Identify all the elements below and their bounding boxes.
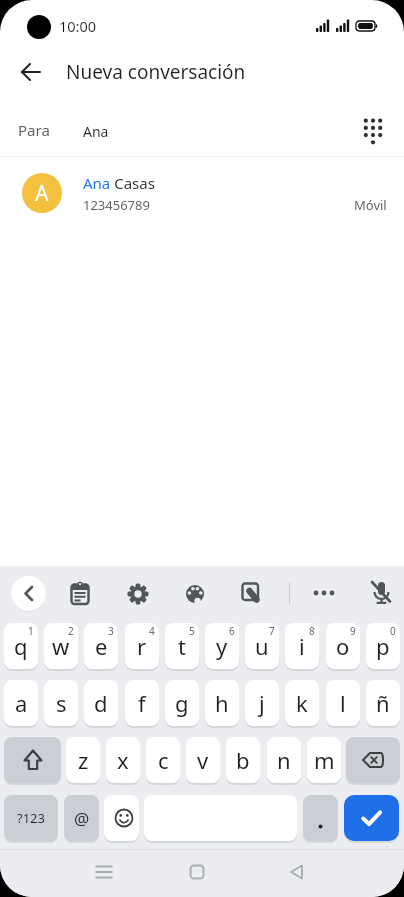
- button[interactable]: x: [106, 737, 140, 783]
- button[interactable]: ñ: [366, 680, 400, 726]
- button[interactable]: y: [205, 623, 239, 669]
- button[interactable]: k: [285, 680, 319, 726]
- button[interactable]: [60, 574, 100, 614]
- staticText: 5: [189, 624, 195, 638]
- staticText: Para: [18, 120, 50, 140]
- button[interactable]: A: [0, 157, 404, 229]
- button[interactable]: r: [125, 623, 159, 669]
- staticText: t: [178, 631, 186, 661]
- staticText: 10:00: [59, 16, 97, 36]
- staticText: Nueva conversación: [66, 59, 246, 85]
- button[interactable]: [346, 737, 400, 783]
- staticText: Ana Casas: [83, 173, 155, 193]
- staticText: i: [299, 631, 305, 661]
- staticText: u: [255, 631, 269, 661]
- staticText: g: [175, 688, 189, 718]
- staticText: o: [336, 631, 350, 661]
- button[interactable]: u: [245, 623, 279, 669]
- staticText: s: [56, 688, 67, 718]
- staticText: k: [296, 688, 308, 718]
- button[interactable]: [231, 573, 271, 613]
- button[interactable]: w: [44, 623, 78, 669]
- staticText: p: [376, 631, 390, 661]
- button[interactable]: o: [326, 623, 360, 669]
- button[interactable]: [304, 573, 344, 613]
- staticText: n: [277, 745, 291, 775]
- staticText: Ana: [83, 122, 109, 141]
- button[interactable]: [179, 854, 215, 890]
- staticText: Móvil: [354, 196, 387, 214]
- button[interactable]: b: [226, 737, 260, 783]
- staticText: d: [94, 688, 108, 718]
- staticText: @: [74, 807, 90, 830]
- button[interactable]: m: [307, 737, 341, 783]
- staticText: v: [197, 745, 209, 775]
- staticText: y: [216, 631, 228, 661]
- button[interactable]: s: [44, 680, 78, 726]
- button[interactable]: [344, 795, 399, 841]
- button[interactable]: ?123: [4, 795, 58, 841]
- staticText: q: [14, 631, 28, 661]
- staticText: r: [137, 631, 147, 661]
- staticText: 4: [149, 624, 155, 638]
- button[interactable]: d: [84, 680, 118, 726]
- staticText: x: [117, 745, 129, 775]
- staticText: h: [215, 688, 229, 718]
- button[interactable]: [104, 795, 139, 841]
- button[interactable]: p: [366, 623, 400, 669]
- staticText: c: [158, 745, 169, 775]
- staticText: ñ: [376, 688, 390, 718]
- staticText: l: [340, 688, 346, 718]
- button[interactable]: @: [64, 795, 99, 841]
- staticText: ?123: [17, 809, 45, 827]
- button[interactable]: z: [66, 737, 100, 783]
- button[interactable]: t: [165, 623, 199, 669]
- staticText: m: [314, 745, 335, 775]
- staticText: 1: [28, 624, 34, 638]
- staticText: 6: [229, 624, 235, 638]
- staticText: b: [236, 745, 250, 775]
- button[interactable]: [86, 854, 122, 890]
- button[interactable]: [363, 573, 403, 613]
- staticText: 8: [309, 624, 315, 638]
- staticText: 123456789: [83, 196, 150, 214]
- staticText: 3: [108, 624, 114, 638]
- button[interactable]: g: [165, 680, 199, 726]
- button[interactable]: [118, 574, 158, 614]
- button[interactable]: v: [186, 737, 220, 783]
- button[interactable]: i: [285, 623, 319, 669]
- button[interactable]: j: [245, 680, 279, 726]
- staticText: e: [95, 631, 108, 661]
- button[interactable]: l: [326, 680, 360, 726]
- staticText: 0: [390, 624, 396, 638]
- button[interactable]: n: [267, 737, 301, 783]
- button[interactable]: e: [84, 623, 118, 669]
- staticText: f: [138, 688, 146, 718]
- button[interactable]: [4, 737, 61, 783]
- staticText: j: [259, 688, 265, 718]
- button[interactable]: a: [4, 680, 38, 726]
- staticText: 7: [269, 624, 275, 638]
- staticText: a: [15, 688, 28, 718]
- button[interactable]: [11, 52, 51, 92]
- staticText: 9: [350, 624, 356, 638]
- button[interactable]: c: [146, 737, 180, 783]
- button[interactable]: [303, 795, 338, 841]
- staticText: 2: [68, 624, 74, 638]
- button[interactable]: [11, 576, 46, 611]
- button[interactable]: [279, 854, 315, 890]
- button[interactable]: [353, 111, 393, 151]
- button[interactable]: [175, 574, 215, 614]
- staticText: z: [78, 745, 89, 775]
- staticText: w: [52, 631, 70, 661]
- button[interactable]: q: [4, 623, 38, 669]
- button[interactable]: h: [205, 680, 239, 726]
- button[interactable]: f: [125, 680, 159, 726]
- staticText: A: [35, 179, 49, 208]
